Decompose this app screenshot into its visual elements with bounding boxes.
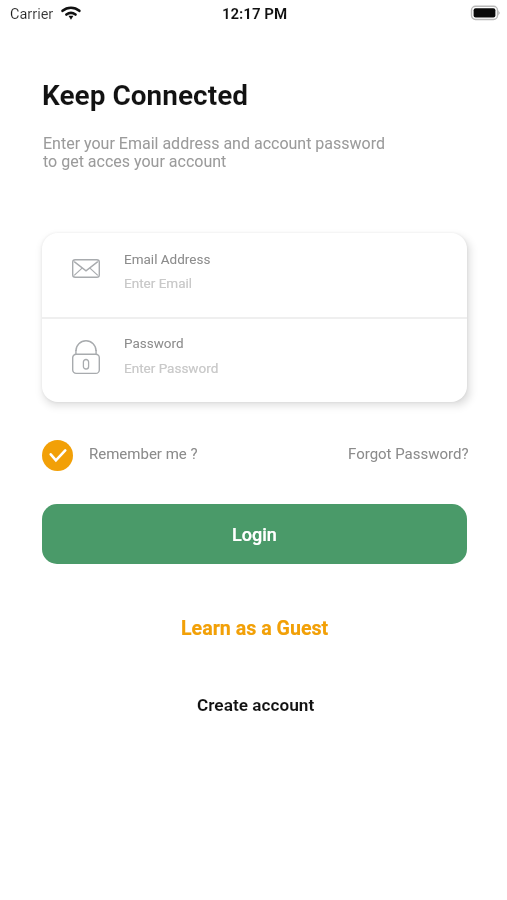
staticText: Forgot Password? xyxy=(348,445,469,463)
staticText: Enter Email xyxy=(124,275,193,291)
button[interactable]: Password xyxy=(42,319,467,402)
button[interactable]: Create account xyxy=(185,688,327,720)
button[interactable]: Login xyxy=(42,504,467,564)
staticText: Password xyxy=(124,335,184,351)
button[interactable]: Learn as a Guest xyxy=(169,610,341,646)
button[interactable]: Email Address xyxy=(42,233,467,317)
staticText: 12:17 PM xyxy=(1,5,507,23)
other: Battery full xyxy=(470,5,500,21)
staticText: Enter your Email address and account pas… xyxy=(43,134,386,171)
button[interactable]: Forgot Password? xyxy=(342,437,475,471)
staticText: Learn as a Guest xyxy=(181,617,329,639)
staticText: Email Address xyxy=(124,251,211,267)
staticText: Remember me ? xyxy=(89,445,198,463)
staticText: Create account xyxy=(197,695,315,713)
staticText: Login xyxy=(232,524,277,545)
button[interactable]: Remember me ? xyxy=(38,437,203,475)
staticText: Keep Connected xyxy=(42,79,249,112)
staticText: Carrier xyxy=(10,6,54,23)
staticText: Enter Password xyxy=(124,360,219,376)
other: Wi-Fi signal xyxy=(61,6,81,20)
